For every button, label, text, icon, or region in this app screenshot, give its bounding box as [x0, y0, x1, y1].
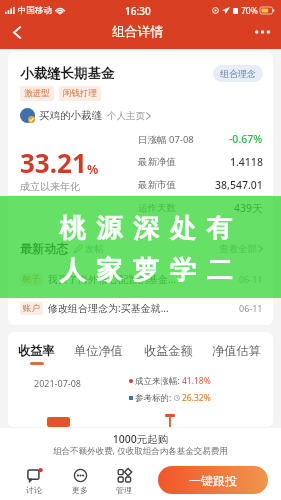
staticText: 中国移动 — [18, 5, 52, 16]
staticText: 修改组合理念为:买基金就... — [48, 301, 169, 315]
staticText: 组合理念 — [220, 68, 256, 79]
button[interactable]: 单位净值 — [74, 343, 123, 358]
staticText: 参考标的: — [135, 392, 174, 404]
staticText: 最新净值 — [138, 156, 176, 168]
staticText: % — [87, 161, 99, 178]
button[interactable]: Back — [0, 18, 34, 46]
staticText: 最新动态 — [20, 241, 68, 256]
staticText: 2021-07-08 — [34, 377, 81, 389]
staticText: 16:30 — [125, 4, 151, 18]
staticText: 06-11 — [239, 273, 263, 285]
button[interactable]: 净值估算 — [212, 343, 261, 358]
staticText: 组合详情 — [112, 24, 164, 40]
button[interactable]: 账户 — [20, 301, 263, 315]
staticText: 账户 — [23, 303, 40, 314]
staticText: 发帖 — [85, 243, 104, 255]
staticText: 33.21 — [20, 145, 87, 180]
staticText: 净值估算 — [212, 343, 261, 358]
staticText: 70% — [241, 5, 258, 17]
staticText: 06-11 — [239, 302, 263, 314]
staticText: 成立来涨幅: — [135, 375, 182, 387]
staticText: 管理 — [116, 485, 132, 495]
staticText: 单位净值 — [74, 343, 123, 358]
staticText: 桃源深处有 — [54, 212, 238, 245]
staticText: 日涨幅 07-08 — [138, 133, 194, 146]
staticText: 个人主页 — [107, 110, 145, 122]
staticText: 讨论 — [26, 485, 42, 495]
staticText: 成立以来年化 — [20, 180, 80, 193]
staticText: 41.18% — [182, 375, 211, 387]
staticText: 38,547.01 — [215, 178, 263, 192]
staticText: 我买了海外核心配置的基金... — [48, 272, 177, 286]
staticText: 一键跟投 — [189, 473, 237, 488]
button[interactable]: 更多 — [65, 469, 95, 495]
staticText: 小裁缝长期基金 — [20, 65, 115, 82]
button[interactable]: 管理 — [109, 469, 139, 495]
staticText: 更多 — [72, 485, 88, 495]
staticText: 运作天数 — [138, 202, 176, 214]
staticText: 人家萝学二 — [54, 254, 238, 287]
staticText: 闲钱打理 — [63, 88, 97, 99]
button[interactable]: 帖子 — [20, 272, 263, 286]
staticText: 帖子 — [23, 274, 40, 285]
staticText: 查看全部 — [219, 243, 257, 255]
staticText: 1.4118 — [230, 155, 263, 169]
button[interactable]: 收益金额 — [144, 343, 193, 358]
staticText: 收益率 — [18, 343, 55, 358]
staticText: 最新市值 — [138, 179, 176, 191]
button[interactable]: More options — [243, 18, 281, 46]
staticText: 激进型 — [24, 88, 50, 99]
button[interactable]: 收益率 — [18, 343, 55, 365]
staticText: 1000元起购 — [0, 432, 281, 446]
staticText: -0.67% — [229, 132, 263, 146]
button[interactable]: 一键跟投 — [158, 466, 268, 494]
staticText: 439天 — [234, 201, 263, 215]
staticText: 收益金额 — [144, 343, 193, 358]
button[interactable]: 组合理念 — [213, 65, 263, 82]
staticText: 买鸡的小裁缝 — [39, 109, 102, 122]
button[interactable]: 讨论 — [19, 469, 49, 495]
staticText: 组合不额外收费, 仅收取组合内各基金交易费用 — [0, 445, 281, 457]
staticText: 26.32% — [182, 392, 211, 404]
